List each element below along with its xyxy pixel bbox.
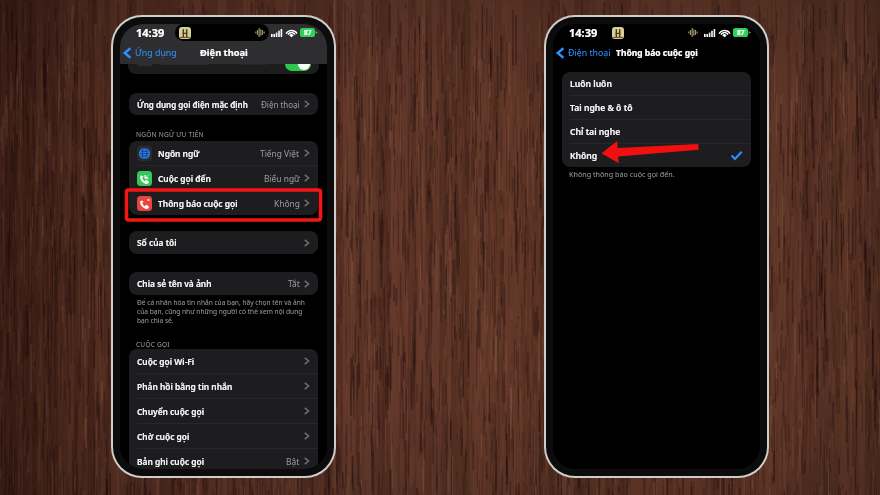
staticText: của bạn, cũng như những người có thể xem… (137, 307, 303, 316)
staticText: Số của tôi (137, 237, 177, 248)
button[interactable]: Luôn luôn (562, 72, 751, 95)
button[interactable]: Chuyển cuộc gọi (129, 399, 318, 423)
staticText: 14:39 (569, 25, 598, 40)
staticText: Tiếng Việt (260, 148, 300, 159)
staticText: Chuyển cuộc gọi (137, 406, 205, 417)
staticText: Điện thoại (261, 99, 300, 110)
staticText: Thông báo cuộc gọi (158, 198, 238, 209)
staticText: Cuộc gọi Wi-Fi (137, 356, 195, 367)
button[interactable]: Điện thoại (556, 47, 614, 59)
staticText: 87 (304, 28, 312, 37)
staticText: Bật (286, 456, 300, 467)
button[interactable]: Thông báo cuộc gọi (129, 191, 318, 215)
staticText: Điện thoại (200, 46, 248, 59)
button[interactable]: Chờ cuộc gọi (129, 424, 318, 448)
staticText: Chỉ tai nghe (570, 126, 621, 138)
button[interactable]: Cuộc gọi đến (129, 166, 318, 190)
staticText: Ứng dụng (135, 47, 177, 59)
staticText: Phản hồi bằng tin nhắn (137, 381, 233, 392)
button[interactable]: Ngôn ngữ (129, 141, 318, 165)
staticText: Không (274, 198, 300, 209)
button[interactable]: Không (562, 144, 751, 167)
button[interactable]: Bản ghi cuộc gọi (129, 449, 318, 469)
staticText: Luôn luôn (570, 78, 612, 90)
button[interactable]: Chia sẻ tên và ảnh (129, 272, 318, 295)
staticText: Thông báo cuộc gọi (616, 47, 698, 59)
staticText: Điện thoại (568, 47, 611, 59)
button[interactable]: Chỉ tai nghe (562, 120, 751, 143)
staticText: Ngôn ngữ (158, 148, 200, 159)
staticText: CUỘC GỌI (136, 340, 170, 349)
staticText: Cuộc gọi đến (158, 173, 211, 184)
button[interactable]: Ứng dụng gọi điện mặc định (129, 93, 318, 115)
staticText: Bản ghi cuộc gọi (137, 456, 205, 467)
button[interactable]: Phản hồi bằng tin nhắn (129, 374, 318, 398)
staticText: Chờ cuộc gọi (137, 431, 190, 442)
staticText: Để cá nhân hóa tin nhắn của bạn, hãy chọ… (137, 298, 305, 307)
staticText: 87 (737, 28, 745, 37)
staticText: Ứng dụng gọi điện mặc định (137, 99, 248, 110)
staticText: Không thông báo cuộc gọi đến. (569, 169, 675, 179)
button[interactable]: Ứng dụng (123, 47, 180, 59)
staticText: 14:39 (136, 25, 165, 40)
staticText: NGÔN NGỮ ƯU TIÊN (136, 130, 204, 139)
staticText: Không (570, 150, 598, 162)
staticText: Chia sẻ tên và ảnh (137, 278, 212, 289)
staticText: Biểu ngữ (264, 173, 300, 184)
button[interactable]: Tai nghe & ô tô (562, 96, 751, 119)
button[interactable]: Số của tôi (129, 231, 318, 254)
staticText: Tắt (288, 278, 300, 289)
button[interactable]: Cuộc gọi Wi-Fi (129, 349, 318, 373)
staticText: bạn chia sẻ. (137, 316, 174, 325)
staticText: Tai nghe & ô tô (570, 102, 633, 114)
